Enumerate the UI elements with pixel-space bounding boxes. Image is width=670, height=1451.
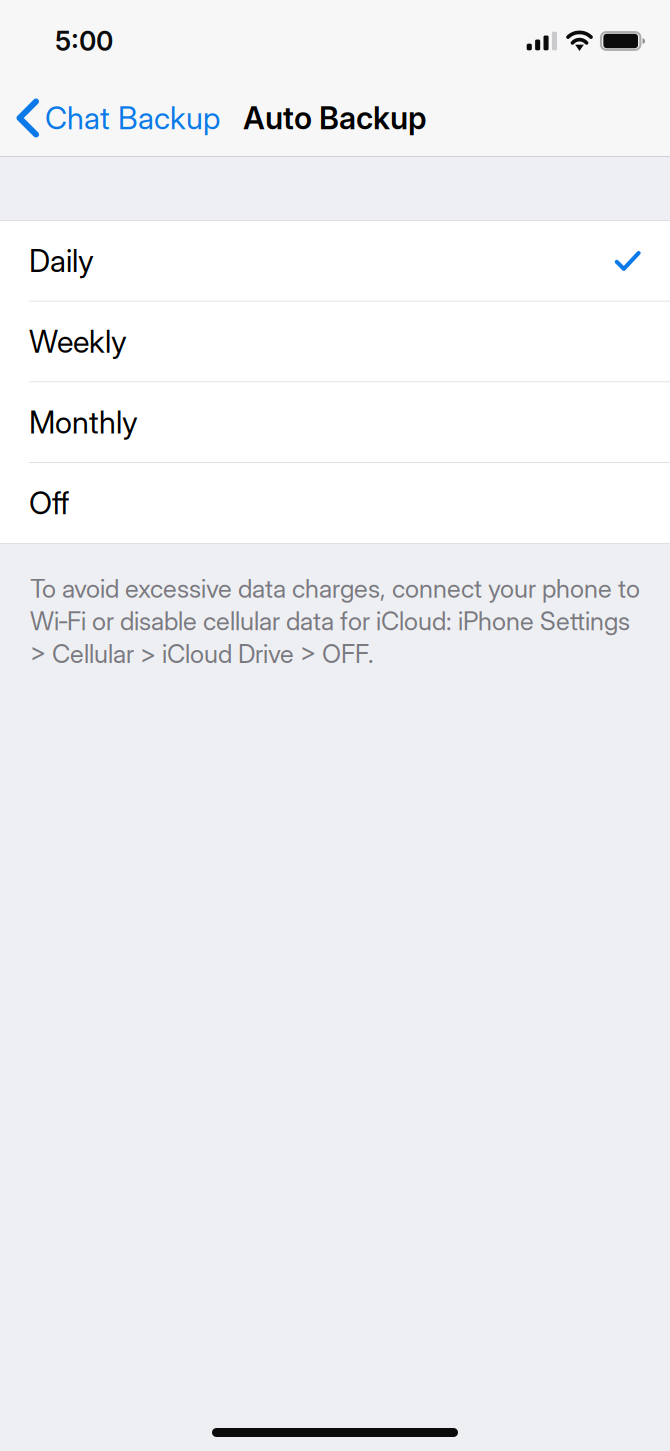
- button[interactable]: Weekly: [0, 302, 670, 382]
- button[interactable]: Chat Backup: [0, 99, 220, 137]
- staticText: Monthly: [29, 404, 138, 441]
- staticText: 5:00: [55, 25, 113, 57]
- button[interactable]: Off: [0, 463, 670, 543]
- button[interactable]: Monthly: [0, 382, 670, 463]
- staticText: To avoid excessive data charges, connect…: [30, 573, 640, 669]
- staticText: Auto Backup: [243, 99, 427, 136]
- staticText: Off: [29, 484, 69, 522]
- staticText: Chat Backup: [45, 99, 220, 136]
- staticText: Daily: [29, 242, 94, 279]
- staticText: Weekly: [29, 323, 127, 360]
- button[interactable]: Daily: [0, 221, 670, 302]
